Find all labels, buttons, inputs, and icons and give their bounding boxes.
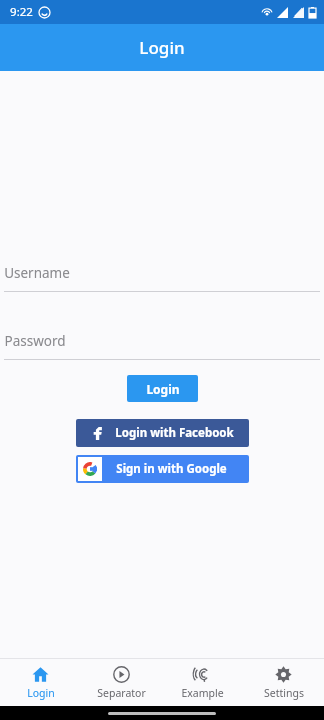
staticText: Username (4, 264, 70, 282)
staticText: Example (181, 686, 224, 700)
button[interactable]: Separator (81, 659, 162, 706)
button[interactable]: Password (0, 328, 324, 354)
staticText: Separator (97, 686, 146, 700)
button[interactable]: Username (0, 260, 324, 286)
staticText: Settings (264, 686, 304, 700)
button[interactable]: Settings (243, 659, 324, 706)
staticText: Password (4, 332, 66, 350)
button[interactable]: Login (127, 375, 198, 402)
staticText: Sign in with Google (116, 461, 227, 477)
button[interactable]: Login (0, 659, 81, 706)
button[interactable]: Sign in with Google (76, 455, 249, 483)
staticText: Login (27, 686, 55, 700)
staticText: Login with Facebook (115, 425, 234, 441)
button[interactable]: Login with Facebook (76, 419, 249, 447)
staticText: Login (146, 381, 180, 397)
staticText: 9:22 (10, 4, 33, 20)
button[interactable]: Example (162, 659, 243, 706)
staticText: Login (139, 36, 185, 59)
